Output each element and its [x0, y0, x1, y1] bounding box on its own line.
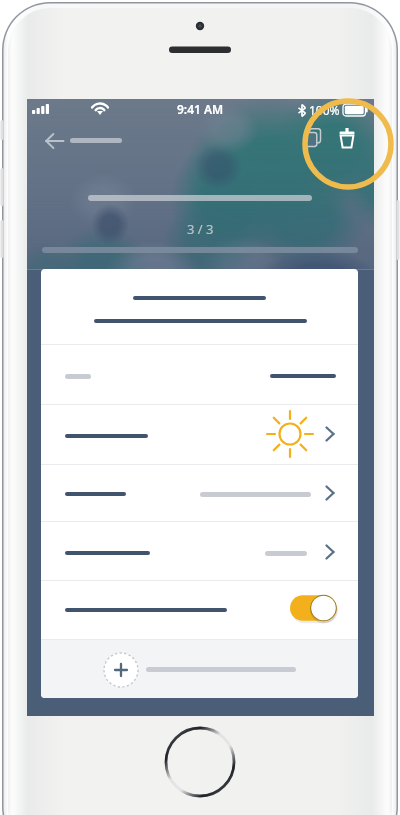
button[interactable]	[41, 640, 358, 698]
button[interactable]: Back	[36, 123, 72, 159]
staticText: 3 / 3	[187, 220, 214, 238]
button[interactable]	[41, 405, 358, 464]
staticText: 9:41 AM	[177, 101, 224, 117]
button[interactable]	[41, 465, 358, 521]
button[interactable]	[41, 345, 358, 404]
staticText: 100%	[309, 102, 340, 118]
button[interactable]	[41, 269, 358, 344]
button[interactable]: Copy	[300, 123, 328, 151]
button[interactable]	[41, 522, 358, 580]
button[interactable]	[41, 581, 358, 639]
button[interactable]: Delete	[333, 124, 361, 152]
